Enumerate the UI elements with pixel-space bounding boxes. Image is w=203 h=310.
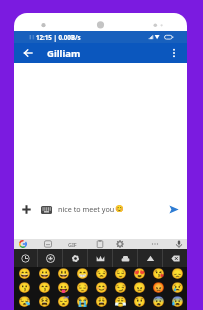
button[interactable]: GIF	[63, 239, 81, 249]
staticText: 😭	[76, 296, 89, 308]
staticText: 😠	[133, 282, 146, 294]
button[interactable]: Smileys	[38, 249, 62, 267]
button[interactable]: 😭	[73, 295, 92, 309]
button[interactable]: Google	[16, 239, 30, 249]
button[interactable]: 😊	[92, 281, 111, 295]
staticText: 😛	[57, 282, 70, 294]
staticText: 😤	[114, 296, 127, 308]
staticText: 😨	[152, 296, 165, 308]
button[interactable]: Add attachment	[18, 201, 35, 218]
button[interactable]: 😌	[111, 267, 130, 281]
staticText: 😢	[171, 282, 184, 294]
staticText: 😊	[115, 205, 124, 213]
staticText: 😒	[95, 268, 108, 280]
button[interactable]: Backspace	[163, 249, 187, 267]
staticText: 😁	[76, 268, 89, 280]
staticText: 😡	[152, 282, 165, 294]
button[interactable]: Nature	[63, 249, 87, 267]
staticText: Gilliam	[47, 47, 81, 60]
button[interactable]: 😪	[14, 295, 34, 309]
button[interactable]: 😍	[130, 267, 149, 281]
button[interactable]: 😙	[34, 281, 54, 295]
button[interactable]: Travel	[113, 249, 137, 267]
staticText: GIF	[68, 241, 77, 248]
button[interactable]: 😁	[73, 267, 92, 281]
button[interactable]: Objects	[138, 249, 162, 267]
button[interactable]: 😰	[168, 295, 187, 309]
button[interactable]: Recent	[14, 249, 37, 267]
button[interactable]: Food	[88, 249, 112, 267]
button[interactable]: 😡	[149, 281, 168, 295]
staticText: 😫	[38, 296, 51, 308]
button[interactable]: 😃	[54, 267, 73, 281]
staticText: 12:15 | 0.00B/s	[36, 33, 81, 41]
button[interactable]: 😲	[130, 295, 149, 309]
button[interactable]: 😤	[111, 295, 130, 309]
staticText: 😏	[114, 282, 127, 294]
button[interactable]: 😏	[111, 281, 130, 295]
staticText: 😍	[133, 268, 146, 280]
button[interactable]: 😨	[149, 295, 168, 309]
button[interactable]: 😘	[149, 267, 168, 281]
staticText: 😞	[171, 268, 184, 280]
staticText: 😀	[38, 268, 51, 280]
button[interactable]: 😠	[130, 281, 149, 295]
staticText: 😙	[38, 282, 51, 294]
button[interactable]: 😗	[14, 281, 34, 295]
staticText: 😰	[171, 296, 184, 308]
button[interactable]: Clipboard	[93, 239, 107, 249]
button[interactable]: 😛	[54, 281, 73, 295]
button[interactable]: Voice input	[172, 239, 186, 249]
button[interactable]: 😞	[168, 267, 187, 281]
button[interactable]: Send	[164, 200, 183, 219]
staticText: 😲	[133, 296, 146, 308]
button[interactable]: 😔	[73, 281, 92, 295]
button[interactable]: 😫	[34, 295, 54, 309]
button[interactable]: Keyboard	[38, 201, 55, 218]
button[interactable]: More options	[166, 43, 182, 63]
button[interactable]: More	[148, 239, 162, 249]
staticText: 😪	[18, 296, 31, 308]
staticText: 😄	[18, 268, 31, 280]
button[interactable]: 😩	[92, 295, 111, 309]
staticText: 😃	[57, 268, 70, 280]
button[interactable]: 😢	[168, 281, 187, 295]
staticText: 😩	[95, 296, 108, 308]
button[interactable]: Settings	[113, 239, 127, 249]
staticText: nice to meet you	[58, 204, 115, 214]
button[interactable]: 😄	[14, 267, 34, 281]
button[interactable]: Back	[19, 43, 37, 63]
button[interactable]: 😴	[54, 295, 73, 309]
staticText: 😌	[114, 268, 127, 280]
staticText: 😗	[18, 282, 31, 294]
button[interactable]: 😀	[34, 267, 54, 281]
staticText: 😘	[152, 268, 165, 280]
button[interactable]: 😒	[92, 267, 111, 281]
staticText: 😴	[57, 296, 70, 308]
button[interactable]: Stickers	[41, 239, 55, 249]
staticText: 😔	[76, 282, 89, 294]
staticText: 😊	[95, 282, 108, 294]
